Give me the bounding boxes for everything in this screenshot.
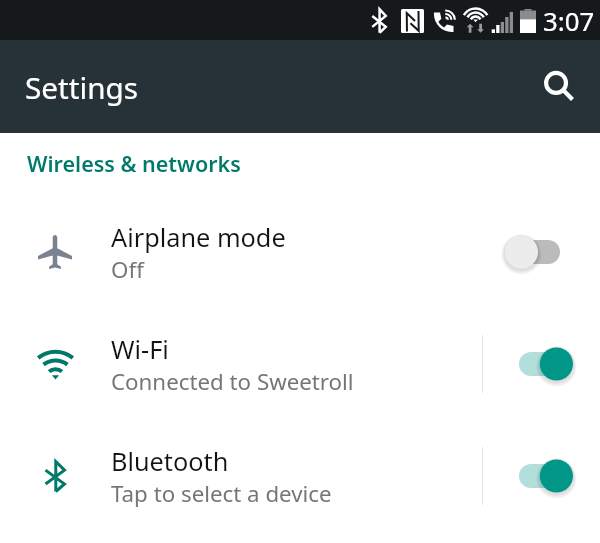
staticText: Bluetooth [111,444,229,478]
staticText: Wi-Fi [111,332,169,366]
button[interactable]: Wi-Fi [0,308,600,420]
button[interactable]: Bluetooth switch [490,420,590,532]
button[interactable]: Search [528,55,575,102]
staticText: Tap to select a device [111,478,332,508]
button[interactable]: Airplane mode [0,196,600,308]
staticText: Wireless & networks [27,149,241,178]
staticText: Connected to Sweetroll [111,366,354,396]
staticText: Settings [25,67,138,107]
button[interactable]: Wi-Fi switch [490,308,590,420]
staticText: Airplane mode [111,220,286,254]
button[interactable]: Airplane mode switch [490,196,590,308]
staticText: Off [111,254,144,284]
button[interactable]: Bluetooth [0,420,600,532]
staticText: 3:07 [543,3,595,38]
